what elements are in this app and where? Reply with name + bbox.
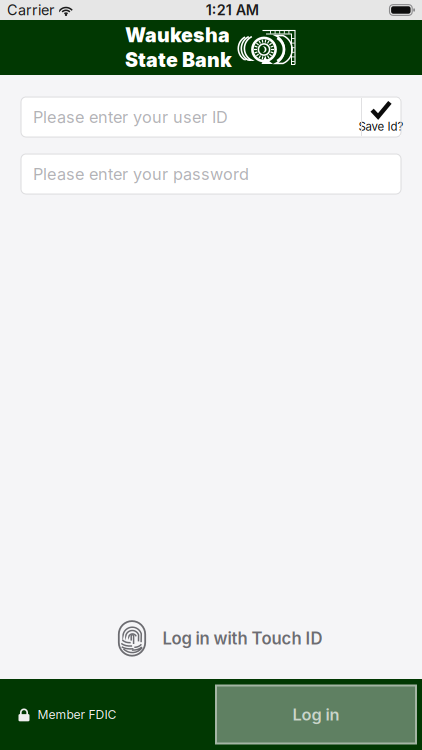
staticText: State Bank — [125, 48, 232, 72]
button[interactable]: Log in — [216, 685, 416, 743]
staticText: Carrier — [7, 1, 54, 19]
staticText: Waukesha — [125, 23, 230, 47]
staticText: Please enter your user ID — [33, 107, 228, 127]
staticText: Please enter your password — [33, 164, 249, 184]
staticText: Log in with Touch ID — [162, 628, 322, 649]
staticText: Member FDIC — [37, 707, 116, 722]
staticText: 1:21 AM — [206, 1, 259, 19]
staticText: Log in — [292, 705, 339, 724]
button[interactable]: Log in with Touch ID — [91, 615, 330, 662]
button[interactable]: Save Id — [361, 98, 401, 136]
staticText: Save Id? — [358, 120, 403, 133]
